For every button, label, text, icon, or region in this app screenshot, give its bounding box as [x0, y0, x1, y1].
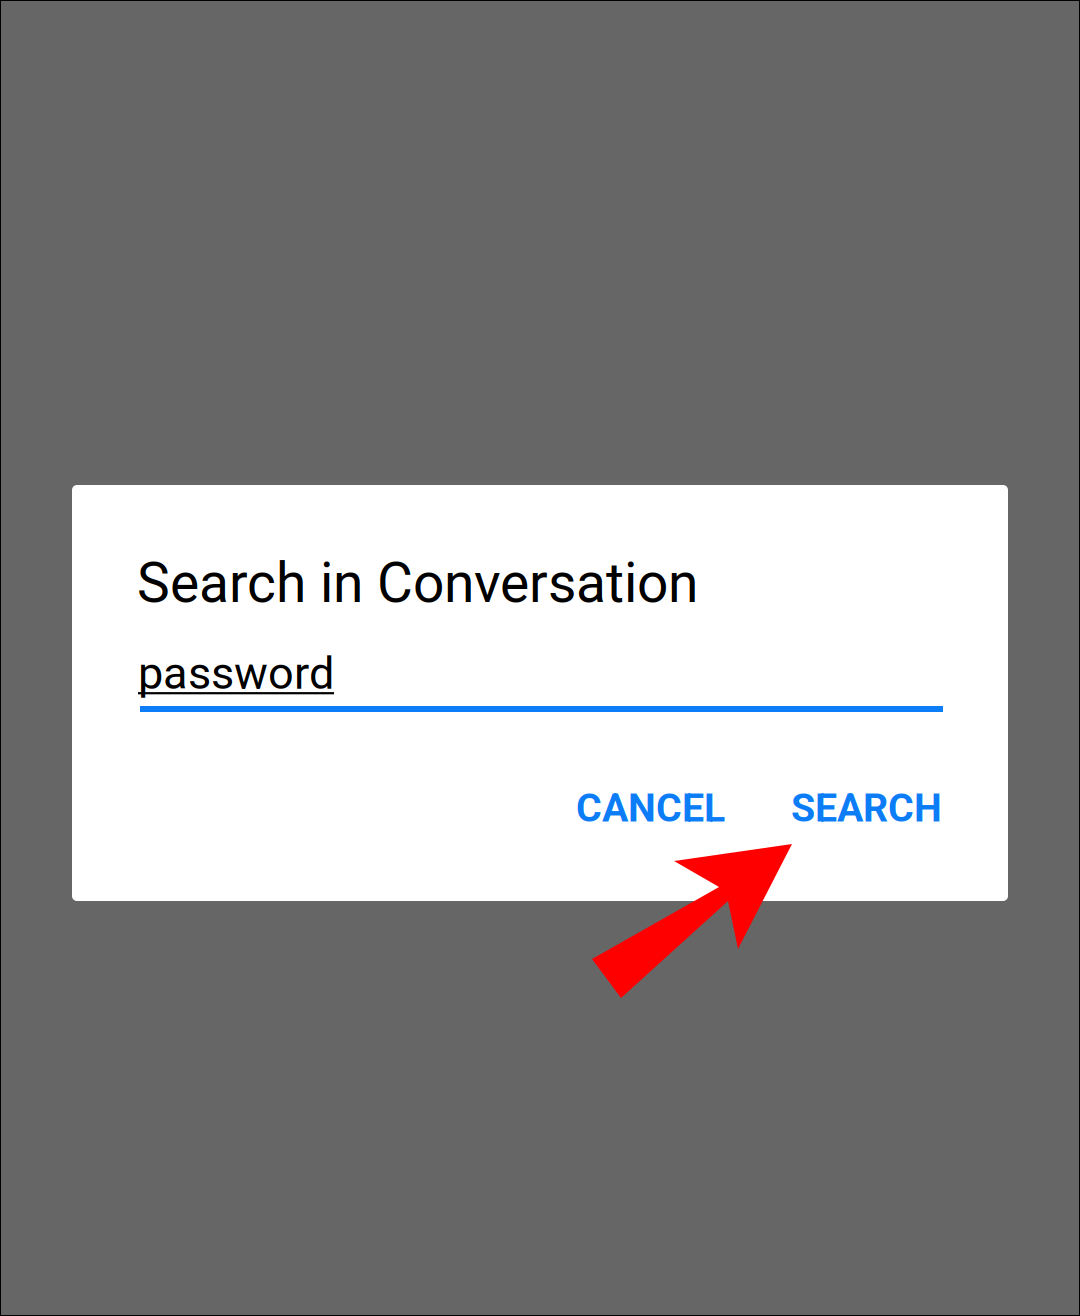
staticText: password — [138, 647, 334, 700]
staticText: SEARCH — [791, 785, 942, 831]
button[interactable]: SEARCH — [777, 775, 956, 841]
button[interactable]: CANCEL — [562, 775, 739, 841]
staticText: CANCEL — [576, 785, 725, 831]
staticText: Search in Conversation — [137, 551, 698, 615]
